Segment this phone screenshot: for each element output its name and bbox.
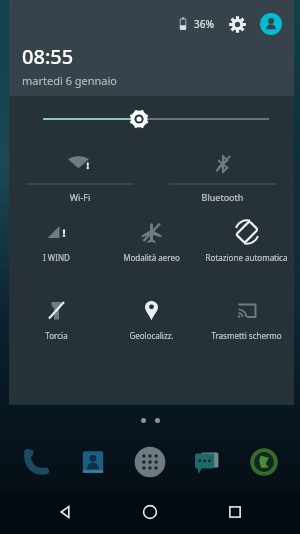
button[interactable]: Modalità aereo	[104, 216, 199, 263]
button[interactable]: Browser	[243, 441, 285, 483]
staticText: Rotazione automatica	[199, 252, 294, 263]
staticText: 08:55	[22, 43, 74, 70]
staticText: Geolocalizz.	[104, 330, 199, 341]
button[interactable]: Rotazione automatica	[199, 216, 294, 263]
button[interactable]: I WIND	[9, 216, 104, 263]
button[interactable]: Settings	[227, 14, 247, 34]
staticText: I WIND	[9, 252, 104, 263]
button[interactable]: Contacts	[72, 441, 114, 483]
button[interactable]: Brightness	[9, 96, 294, 142]
button[interactable]: Phone	[15, 441, 57, 483]
staticText: Modalità aereo	[104, 252, 199, 263]
button[interactable]: Trasmetti schermo	[199, 294, 294, 341]
staticText: Trasmetti schermo	[199, 330, 294, 341]
button[interactable]: Wi-Fi	[27, 142, 133, 216]
staticText: martedì 6 gennaio	[22, 73, 118, 88]
button[interactable]: Recents	[215, 492, 255, 532]
staticText: Torcia	[9, 330, 104, 341]
button[interactable]: Geolocalizz.	[104, 294, 199, 341]
staticText: 36%	[194, 17, 214, 31]
button[interactable]: Back	[45, 492, 85, 532]
staticText: Wi-Fi	[27, 191, 133, 203]
button[interactable]: User	[260, 13, 282, 35]
staticText: Bluetooth	[169, 191, 276, 203]
button[interactable]: Messaging	[186, 441, 228, 483]
button[interactable]: Home	[130, 492, 170, 532]
button[interactable]: Torcia	[9, 294, 104, 341]
button[interactable]: Bluetooth	[169, 142, 276, 216]
button[interactable]: All apps	[129, 441, 171, 483]
